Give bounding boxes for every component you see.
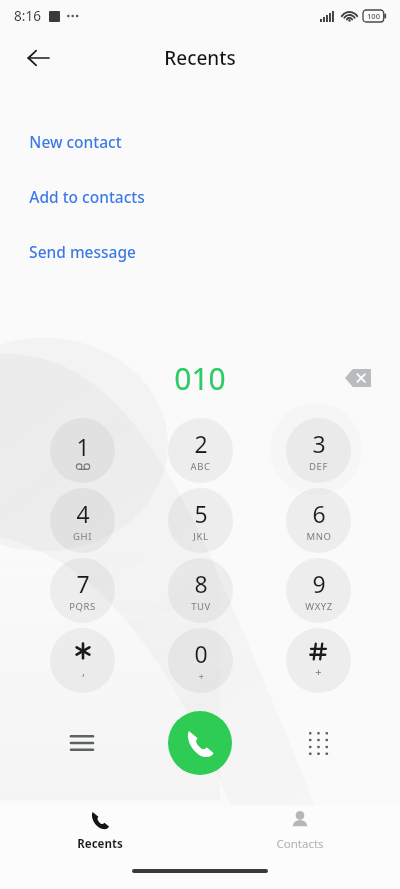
staticText: DEF bbox=[309, 460, 328, 473]
staticText: 5 bbox=[194, 498, 208, 529]
staticText: TUV bbox=[191, 600, 211, 613]
button[interactable]: 8 bbox=[168, 558, 233, 623]
staticText: 8 bbox=[194, 568, 208, 599]
staticText: PQRS bbox=[69, 600, 96, 613]
staticText: Recents bbox=[164, 45, 236, 71]
button[interactable]: Recents bbox=[0, 805, 200, 857]
button[interactable]: Back bbox=[14, 34, 62, 82]
staticText: 9 bbox=[312, 568, 326, 599]
button[interactable]: 2 bbox=[168, 418, 233, 483]
button[interactable]: 0 bbox=[168, 628, 233, 693]
button[interactable]: Add to contacts bbox=[0, 169, 400, 224]
staticText: 2 bbox=[194, 428, 208, 459]
staticText: 0 bbox=[194, 638, 208, 669]
staticText: ABC bbox=[190, 460, 211, 473]
staticText: 6 bbox=[312, 498, 326, 529]
button[interactable]: + bbox=[286, 628, 351, 693]
staticText: Recents bbox=[77, 836, 123, 852]
staticText: 4 bbox=[76, 498, 90, 529]
staticText: 010 bbox=[174, 358, 226, 399]
staticText: 3 bbox=[312, 428, 326, 459]
staticText: Add to contacts bbox=[29, 186, 145, 207]
staticText: GHI bbox=[73, 530, 92, 543]
button[interactable]: Call bbox=[168, 711, 232, 775]
button[interactable]: 4 bbox=[50, 488, 115, 553]
button[interactable]: 3 bbox=[286, 418, 351, 483]
staticText: 1 bbox=[76, 431, 90, 462]
staticText: , bbox=[82, 664, 85, 679]
button[interactable]: Call log menu bbox=[58, 719, 106, 767]
button[interactable]: Contacts bbox=[200, 805, 400, 857]
staticText: 100 bbox=[367, 11, 380, 21]
staticText: + bbox=[315, 664, 322, 679]
staticText: 8:16 bbox=[14, 7, 41, 25]
button[interactable]: 5 bbox=[168, 488, 233, 553]
staticText: MNO bbox=[306, 530, 332, 543]
button[interactable]: 1 bbox=[50, 418, 115, 483]
button[interactable]: New contact bbox=[0, 114, 400, 169]
staticText: WXYZ bbox=[305, 600, 333, 613]
button[interactable]: 6 bbox=[286, 488, 351, 553]
button[interactable]: Keypad bbox=[294, 719, 342, 767]
button[interactable]: 7 bbox=[50, 558, 115, 623]
staticText: New contact bbox=[29, 131, 122, 152]
staticText: Contacts bbox=[276, 836, 324, 852]
button[interactable]: Send message bbox=[0, 224, 400, 279]
staticText: Send message bbox=[29, 241, 136, 262]
staticText: 7 bbox=[76, 568, 90, 599]
button[interactable]: , bbox=[50, 628, 115, 693]
button[interactable]: Backspace bbox=[336, 356, 380, 400]
button[interactable]: 9 bbox=[286, 558, 351, 623]
staticText: + bbox=[198, 670, 205, 683]
staticText: JKL bbox=[193, 530, 209, 543]
